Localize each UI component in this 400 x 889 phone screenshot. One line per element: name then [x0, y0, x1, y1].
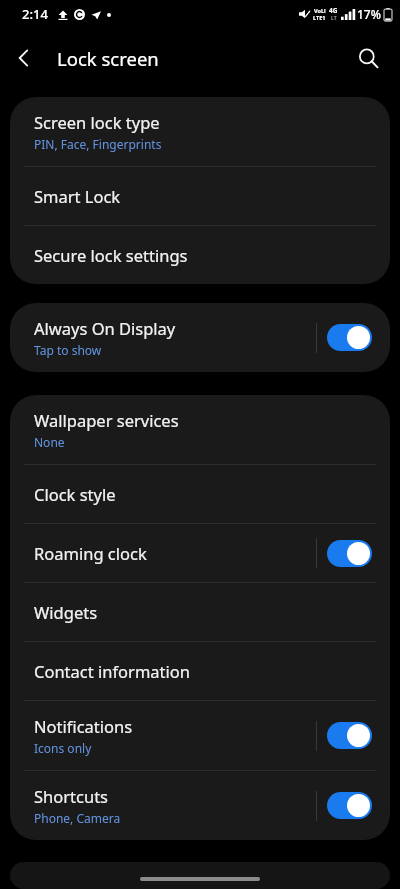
staticText: Notifications [34, 715, 133, 737]
staticText: Phone, Camera [34, 810, 121, 826]
staticText: Shortcuts [34, 785, 108, 807]
button[interactable]: Toggle Roaming clock [327, 540, 372, 567]
staticText: Roaming clock [34, 542, 147, 564]
button[interactable]: Back [0, 34, 48, 82]
staticText: LT [331, 15, 337, 22]
button[interactable]: Roaming clock [10, 524, 390, 582]
staticText: None [34, 434, 65, 450]
staticText: PIN, Face, Fingerprints [34, 136, 162, 152]
staticText: Smart Lock [34, 185, 121, 207]
staticText: Widgets [34, 601, 98, 623]
button[interactable]: Toggle Shortcuts [327, 792, 372, 819]
button[interactable]: About Lock screen [10, 862, 390, 889]
staticText: 17% [357, 6, 381, 22]
staticText: Screen lock type [34, 111, 160, 133]
button[interactable]: Widgets [10, 583, 390, 641]
button[interactable]: Toggle Notifications [327, 722, 372, 749]
button[interactable]: Screen lock type [10, 97, 390, 166]
staticText: 2:14 [22, 5, 48, 23]
staticText: LTE1 [313, 14, 326, 21]
staticText: Wallpaper services [34, 409, 179, 431]
staticText: Icons only [34, 740, 92, 756]
staticText: Clock style [34, 483, 116, 505]
staticText: Tap to show [34, 342, 102, 358]
button[interactable]: Search [344, 34, 392, 82]
staticText: VoLl [314, 7, 326, 14]
button[interactable]: Secure lock settings [10, 226, 390, 284]
button[interactable]: Notifications [10, 701, 390, 770]
staticText: Always On Display [34, 317, 176, 339]
button[interactable]: Clock style [10, 465, 390, 523]
button[interactable]: Wallpaper services [10, 395, 390, 464]
button[interactable]: Toggle Always On Display [327, 324, 372, 351]
staticText: Lock screen [57, 46, 159, 71]
button[interactable]: Contact information [10, 642, 390, 700]
button[interactable]: Always On Display [10, 303, 390, 372]
staticText: Secure lock settings [34, 244, 188, 266]
button[interactable]: Shortcuts [10, 771, 390, 840]
button[interactable]: Smart Lock [10, 167, 390, 225]
staticText: 4G [329, 6, 338, 15]
staticText: Contact information [34, 660, 190, 682]
